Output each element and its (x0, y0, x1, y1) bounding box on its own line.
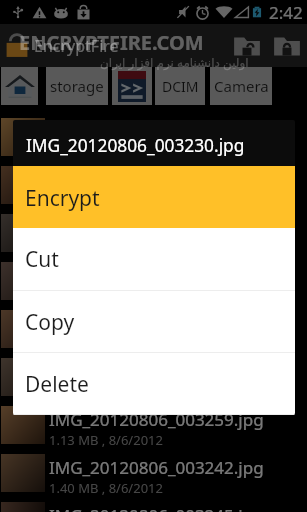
button[interactable]: App icon (0, 24, 34, 67)
button[interactable]: Home (1, 67, 38, 105)
button[interactable]: Delete (13, 353, 295, 415)
button[interactable]: IMG_20120806_003230.jpg (0, 213, 307, 261)
staticText: ENCRYPTFIRE.COM (19, 29, 204, 56)
staticText: 1.02 MB , 8/6/2012 (49, 239, 163, 257)
staticText: IMG_20120806_003230.jpg (26, 134, 245, 158)
staticText: IMG_20120806_003239.jpg (49, 312, 264, 335)
staticText: Copy (25, 308, 75, 337)
button[interactable]: Cut (13, 228, 295, 291)
button[interactable]: IMG_20120806_003255.jpg (0, 357, 307, 405)
staticText: 1.40 MB , 8/6/2012 (49, 479, 163, 497)
button[interactable]: Encrypt (13, 168, 295, 228)
button[interactable]: IMG_20120806_003224.jpg (0, 165, 307, 213)
staticText: 1.13 MB , 8/6/2012 (49, 383, 163, 401)
staticText: IMG_20120806_003242.jpg (49, 456, 264, 479)
staticText: IMG_20120806_003255.jpg (49, 360, 264, 383)
button[interactable]: IMG_20120806_003245.jpg (0, 501, 307, 512)
button[interactable]: IMG_20120806_003242.jpg (0, 453, 307, 501)
staticText: DCIM (162, 77, 199, 96)
button[interactable]: SD card (112, 67, 152, 105)
staticText: Cut (25, 245, 59, 274)
staticText: 1.20 MB , 8/6/2012 (49, 287, 163, 305)
staticText: 0.92 MB , 8/6/2012 (49, 143, 163, 161)
staticText: Delete (25, 370, 89, 399)
button[interactable]: Camera (210, 67, 272, 105)
staticText: 0.98 MB , 8/6/2012 (49, 191, 163, 209)
button[interactable]: Encrypt folder (267, 24, 307, 67)
button[interactable]: IMG_20120806_003236.jpg (0, 261, 307, 309)
staticText: 1.13 MB , 8/6/2012 (49, 431, 163, 449)
staticText: IMG_20120806_003220.jpg (49, 120, 264, 143)
staticText: IMG_20120806_003230.jpg (49, 216, 264, 239)
staticText: storage (50, 76, 104, 96)
button[interactable]: Decrypt folder (227, 24, 267, 67)
button[interactable]: IMG_20120806_003259.jpg (0, 405, 307, 453)
button[interactable]: IMG_20120806_003220.jpg (0, 117, 307, 165)
staticText: 2:42 (269, 1, 303, 24)
button[interactable]: Copy (13, 291, 295, 353)
staticText: EncryptFire (34, 35, 119, 57)
button[interactable]: DCIM (155, 67, 205, 105)
staticText: IMG_20120806_003259.jpg (49, 408, 264, 431)
staticText: Camera (214, 76, 269, 96)
button[interactable]: IMG_20120806_003239.jpg (0, 309, 307, 357)
staticText: اولین دانشنامه نرم افزار ایران (100, 54, 249, 70)
staticText: IMG_20120806_003236.jpg (49, 264, 264, 287)
staticText: Encrypt (25, 184, 100, 213)
staticText: IMG_20120806_003245.jpg (49, 504, 264, 512)
staticText: 1.11 MB , 8/6/2012 (49, 335, 163, 353)
button[interactable]: storage (46, 67, 108, 105)
